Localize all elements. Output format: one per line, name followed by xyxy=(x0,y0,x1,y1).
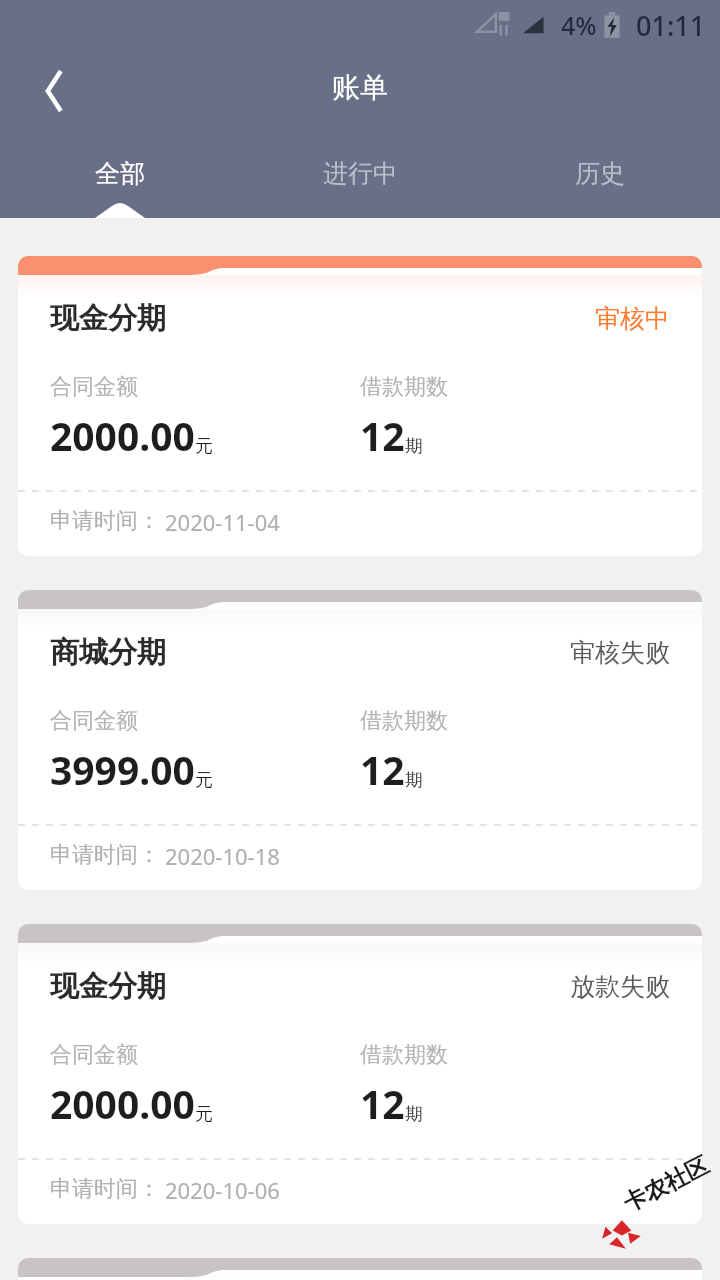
staticText: 12 xyxy=(360,1077,405,1130)
staticText: 审核中 xyxy=(595,303,670,334)
staticText: 12 xyxy=(360,743,405,796)
staticText: 现金分期 xyxy=(50,968,166,1005)
button[interactable]: Back xyxy=(18,58,84,124)
staticText: 账单 xyxy=(332,70,388,105)
staticText: 卡农社区 xyxy=(618,1151,713,1218)
staticText: 元 xyxy=(195,435,213,458)
staticText: 申请时间： xyxy=(50,507,160,535)
staticText: 合同金额 xyxy=(50,707,138,735)
staticText: 2000.00 xyxy=(50,409,195,462)
staticText: 全部 xyxy=(95,158,145,189)
staticText: 12 xyxy=(360,409,405,462)
staticText: 元 xyxy=(195,769,213,792)
staticText: 借款期数 xyxy=(360,373,448,401)
button[interactable]: 商城分期 xyxy=(18,590,702,890)
staticText: 放款失败 xyxy=(570,971,670,1002)
staticText: 2020-10-06 xyxy=(165,1175,280,1205)
staticText: 期 xyxy=(405,1103,423,1126)
staticText: 2020-10-18 xyxy=(165,841,280,871)
staticText: 审核失败 xyxy=(570,637,670,668)
button[interactable] xyxy=(18,1258,702,1280)
button[interactable]: 历史 xyxy=(480,152,720,195)
staticText: 元 xyxy=(195,1103,213,1126)
staticText: 借款期数 xyxy=(360,1041,448,1069)
button[interactable]: 全部 xyxy=(0,152,240,195)
staticText: 申请时间： xyxy=(50,1175,160,1203)
staticText: 合同金额 xyxy=(50,1041,138,1069)
staticText: 2020-11-04 xyxy=(165,507,280,537)
button[interactable]: 现金分期 xyxy=(18,256,702,556)
button[interactable]: 进行中 xyxy=(240,152,480,195)
staticText: 期 xyxy=(405,769,423,792)
staticText: 期 xyxy=(405,435,423,458)
staticText: 合同金额 xyxy=(50,373,138,401)
staticText: 借款期数 xyxy=(360,707,448,735)
staticText: 4% xyxy=(561,8,597,42)
button[interactable]: 现金分期 xyxy=(18,924,702,1224)
staticText: 历史 xyxy=(575,158,625,189)
staticText: 2000.00 xyxy=(50,1077,195,1130)
staticText: 申请时间： xyxy=(50,841,160,869)
staticText: 商城分期 xyxy=(50,634,166,671)
staticText: 现金分期 xyxy=(50,300,166,337)
staticText: 进行中 xyxy=(323,158,398,189)
staticText: 3999.00 xyxy=(50,743,195,796)
staticText: 01:11 xyxy=(636,7,706,44)
